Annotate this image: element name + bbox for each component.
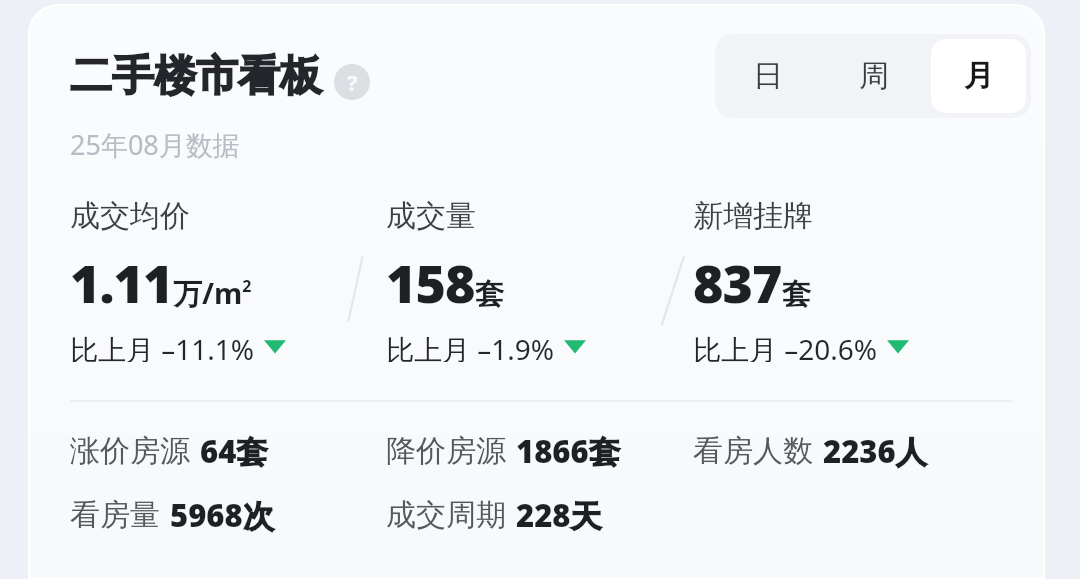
staticText: 2236人: [823, 430, 927, 472]
staticText: 看房量: [70, 496, 160, 534]
staticText: 月: [964, 57, 994, 95]
staticText: 比上月 –11.1%: [70, 330, 255, 362]
staticText: 1.11: [70, 247, 173, 318]
staticText: 比上月 –20.6%: [693, 330, 878, 362]
staticText: 套: [475, 276, 504, 313]
staticText: 837: [693, 247, 782, 318]
staticText: 日: [753, 57, 783, 95]
staticText: 成交量: [386, 197, 476, 235]
button[interactable]: 日: [720, 39, 816, 113]
button[interactable]: 成交量: [386, 197, 693, 362]
staticText: 158: [386, 247, 475, 318]
staticText: 比上月 –1.9%: [386, 330, 555, 362]
button[interactable]: 降价房源: [386, 430, 693, 472]
staticText: 看房人数: [693, 432, 813, 470]
button[interactable]: 帮助说明: [334, 64, 370, 100]
staticText: 1866套: [516, 430, 620, 472]
button[interactable]: 看房人数: [693, 430, 1025, 472]
staticText: 新增挂牌: [693, 197, 813, 235]
button[interactable]: 看房量: [70, 494, 386, 536]
staticText: 5968次: [170, 494, 274, 536]
button[interactable]: 成交周期: [386, 494, 693, 536]
button[interactable]: 周: [826, 39, 921, 113]
staticText: 降价房源: [386, 432, 506, 470]
button[interactable]: 涨价房源: [70, 430, 386, 472]
button[interactable]: 月: [931, 39, 1026, 113]
staticText: ?: [347, 67, 358, 97]
button[interactable]: 新增挂牌: [693, 197, 1025, 362]
staticText: 64套: [200, 430, 268, 472]
staticText: 万/m2: [173, 273, 252, 313]
staticText: 成交均价: [70, 197, 190, 235]
staticText: 周: [859, 57, 889, 95]
staticText: 25年08月数据: [70, 126, 240, 163]
staticText: 涨价房源: [70, 432, 190, 470]
button[interactable]: 成交均价: [70, 197, 386, 362]
staticText: 成交周期: [386, 496, 506, 534]
staticText: 二手楼市看板: [70, 50, 322, 103]
staticText: 228天: [516, 494, 602, 536]
staticText: 套: [782, 276, 811, 313]
